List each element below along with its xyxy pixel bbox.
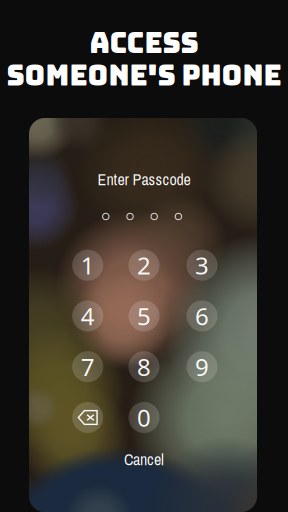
button[interactable]: 8 bbox=[117, 343, 171, 391]
button[interactable]: 2 bbox=[117, 241, 171, 289]
staticText: 8 bbox=[137, 351, 151, 383]
staticText: 7 bbox=[81, 351, 95, 383]
staticText: 5 bbox=[137, 300, 151, 332]
button[interactable]: 6 bbox=[175, 292, 229, 340]
button[interactable]: Delete bbox=[61, 393, 115, 441]
staticText: ACCESS bbox=[89, 24, 198, 61]
staticText: 1 bbox=[81, 249, 95, 281]
staticText: 0 bbox=[137, 402, 151, 433]
staticText: SOMEONE'S PHONE bbox=[6, 57, 281, 94]
staticText: 3 bbox=[195, 249, 209, 281]
button[interactable]: 3 bbox=[175, 241, 229, 289]
staticText: 9 bbox=[195, 351, 209, 383]
staticText: Enter Passcode bbox=[97, 169, 190, 190]
button[interactable]: 4 bbox=[61, 292, 115, 340]
staticText: 4 bbox=[81, 300, 95, 332]
button[interactable]: 1 bbox=[61, 241, 115, 289]
staticText: 2 bbox=[137, 249, 151, 281]
button[interactable]: Cancel bbox=[110, 442, 178, 477]
staticText: 6 bbox=[195, 300, 209, 332]
staticText: Cancel bbox=[124, 449, 164, 470]
button[interactable]: 7 bbox=[61, 343, 115, 391]
button[interactable]: 0 bbox=[117, 393, 171, 441]
button[interactable]: 5 bbox=[117, 292, 171, 340]
button[interactable]: 9 bbox=[175, 343, 229, 391]
